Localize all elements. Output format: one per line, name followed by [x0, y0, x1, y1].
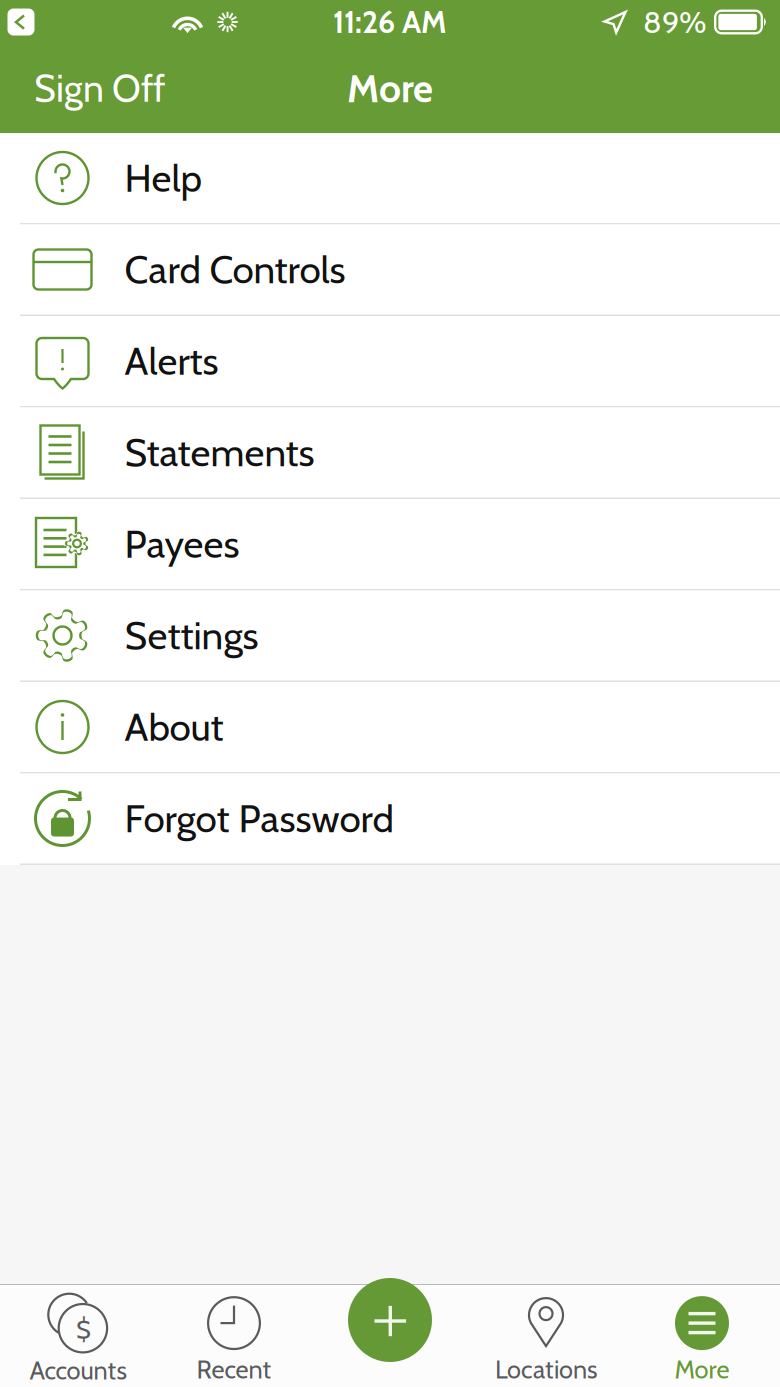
- staticText: Settings: [124, 612, 258, 659]
- staticText: 11:26 AM: [333, 3, 447, 41]
- button[interactable]: Card Controls: [0, 224, 780, 316]
- staticText: Card Controls: [124, 246, 345, 293]
- button[interactable]: Payees: [0, 499, 780, 590]
- button[interactable]: Recent: [156, 1284, 312, 1387]
- button[interactable]: Alerts: [0, 316, 780, 407]
- button[interactable]: Help: [0, 133, 780, 224]
- button[interactable]: Add: [348, 1278, 432, 1362]
- button[interactable]: Forgot Password: [0, 773, 780, 865]
- button[interactable]: Settings: [0, 590, 780, 682]
- staticText: Sign Off: [34, 66, 165, 111]
- staticText: Recent: [196, 1354, 271, 1385]
- button[interactable]: $: [0, 1284, 156, 1387]
- staticText: Payees: [124, 520, 239, 567]
- staticText: Forgot Password: [124, 795, 393, 842]
- staticText: 89%: [643, 3, 707, 41]
- staticText: Statements: [124, 429, 314, 476]
- staticText: Locations: [495, 1354, 597, 1385]
- button[interactable]: About: [0, 682, 780, 773]
- staticText: More: [674, 1354, 729, 1385]
- staticText: $: [76, 1314, 91, 1345]
- button[interactable]: Locations: [468, 1284, 624, 1387]
- staticText: Alerts: [124, 337, 218, 384]
- staticText: More: [347, 65, 433, 112]
- staticText: Help: [124, 154, 202, 201]
- button[interactable]: Sign Off: [0, 52, 199, 125]
- button[interactable]: More: [624, 1284, 780, 1387]
- button[interactable]: Statements: [0, 407, 780, 499]
- staticText: Accounts: [29, 1355, 126, 1386]
- staticText: About: [124, 703, 223, 750]
